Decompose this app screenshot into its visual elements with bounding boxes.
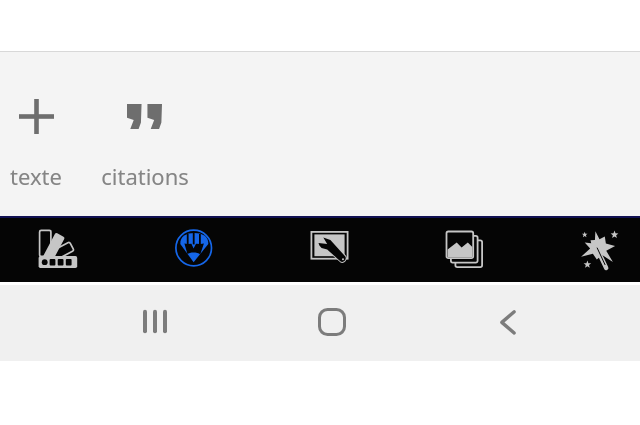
button[interactable]: Brush effects	[162, 218, 226, 282]
button[interactable]: Photo library	[433, 218, 497, 282]
staticText: texte	[10, 161, 62, 191]
staticText: citations	[101, 161, 189, 191]
button[interactable]: Color palette	[26, 218, 90, 282]
button[interactable]: Home	[296, 285, 368, 361]
button[interactable]: Recent apps	[119, 285, 191, 361]
button[interactable]: texte	[0, 52, 72, 216]
button[interactable]: Back	[472, 285, 544, 361]
button[interactable]: Magic enhance	[566, 218, 630, 282]
button[interactable]: citations	[72, 52, 217, 216]
button[interactable]: Image tools	[298, 218, 362, 282]
